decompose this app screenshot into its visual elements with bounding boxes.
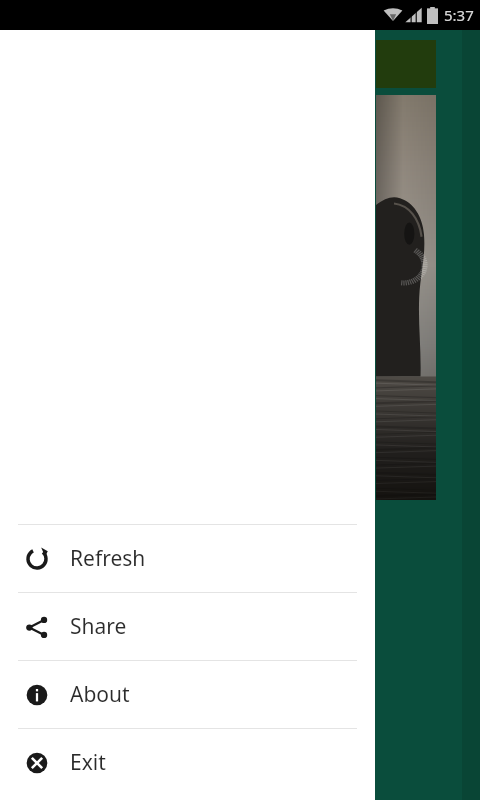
staticText: About [70,680,130,709]
staticText: Share [70,612,127,641]
button[interactable]: Refresh [0,525,375,592]
button[interactable]: Share [0,593,375,660]
staticText: Refresh [70,544,146,573]
button[interactable]: About [0,661,375,728]
staticText: Exit [70,748,106,777]
staticText: 5:37 [444,5,474,25]
button[interactable]: Exit [0,729,375,796]
